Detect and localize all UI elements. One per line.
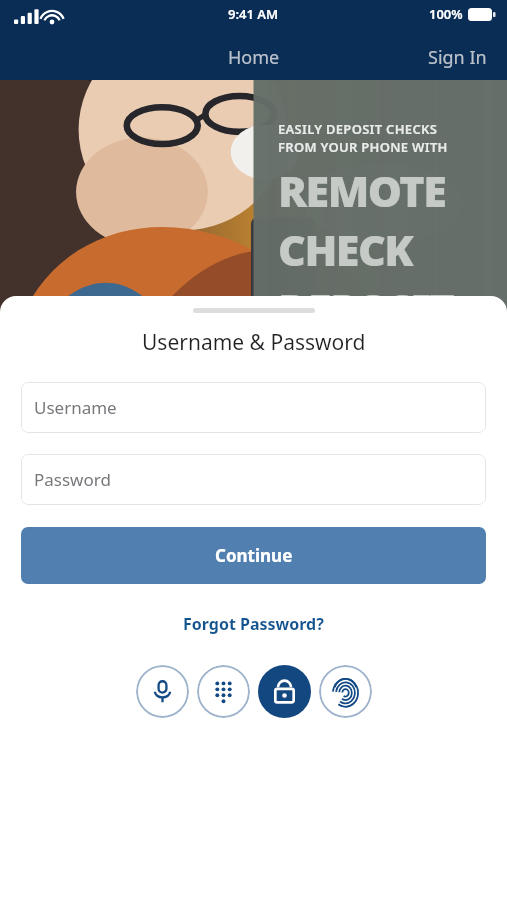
button[interactable]: Forgot Password? [175, 609, 332, 639]
staticText: Password [34, 468, 111, 491]
staticText: Username & Password [142, 328, 366, 357]
staticText: Username [34, 396, 117, 419]
staticText: 9:41 AM [228, 5, 279, 23]
staticText: EASILY DEPOSIT CHECKS [278, 120, 438, 138]
staticText: Home [228, 45, 280, 70]
button[interactable]: Username [21, 382, 486, 433]
button[interactable]: Passcode keypad [197, 665, 250, 718]
button[interactable]: Password [21, 454, 486, 505]
staticText: Sign In [428, 45, 487, 70]
staticText: REMOTE [278, 161, 446, 220]
button[interactable]: Fingerprint sign in [319, 665, 372, 718]
staticText: Forgot Password? [183, 613, 324, 635]
button[interactable]: Home [218, 41, 290, 74]
staticText: FROM YOUR PHONE WITH [278, 138, 448, 156]
button[interactable]: Continue [21, 527, 486, 584]
button[interactable]: Username and password [258, 665, 311, 718]
button[interactable]: Sign In [418, 41, 497, 74]
staticText: Continue [215, 544, 293, 567]
staticText: 100% [429, 5, 463, 23]
staticText: DEPOSIT [278, 279, 454, 338]
staticText: CHECK [278, 220, 413, 279]
button[interactable]: Voice sign in [136, 665, 189, 718]
